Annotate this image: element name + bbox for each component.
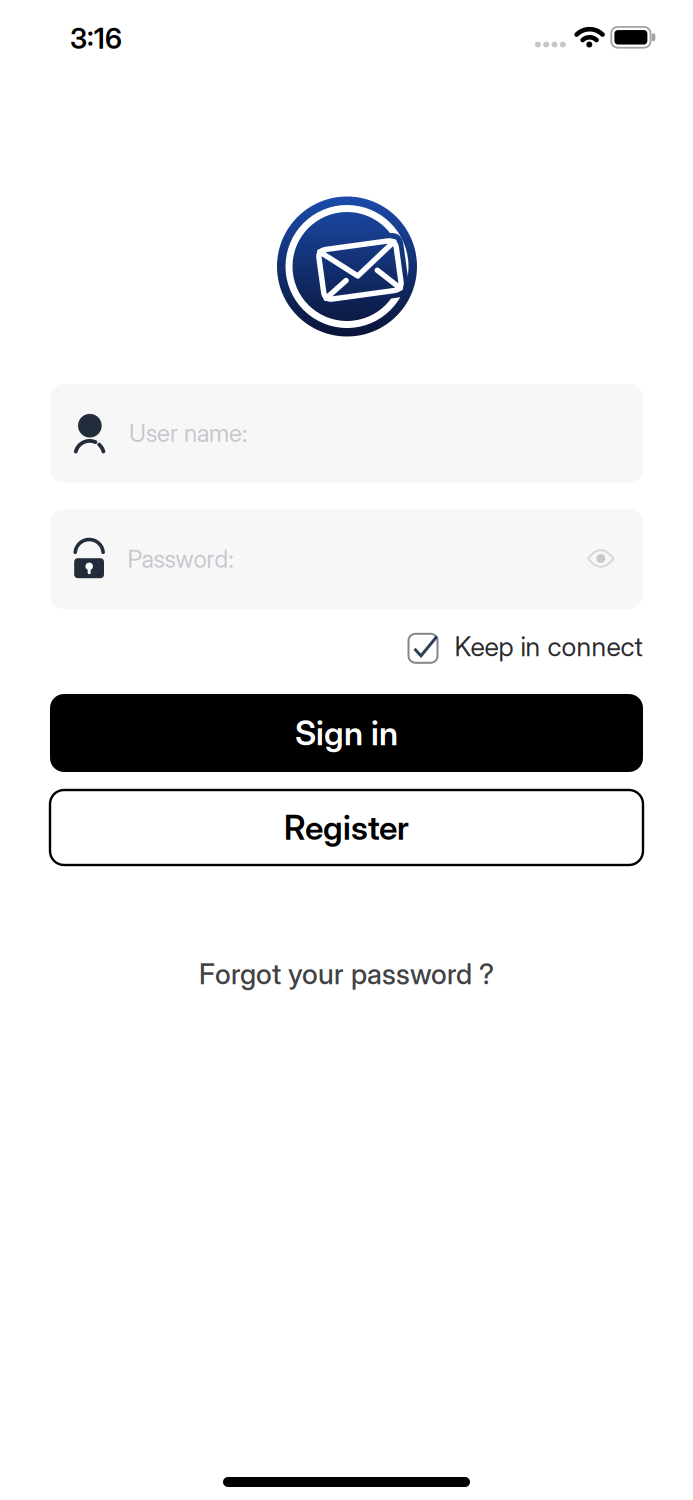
staticText: 3:16 (70, 22, 122, 55)
button[interactable]: User name: (50, 384, 643, 482)
staticText: Password: (127, 545, 233, 573)
staticText: Register (284, 808, 409, 847)
button[interactable]: Password: (50, 509, 643, 609)
button[interactable]: Keep in connect (408, 626, 643, 670)
button[interactable]: Register (50, 790, 643, 865)
staticText: Forgot your password ? (199, 957, 494, 990)
button[interactable]: Sign in (50, 694, 643, 772)
staticText: Sign in (295, 713, 398, 753)
staticText: User name: (129, 419, 247, 447)
button[interactable]: Forgot your password ? (199, 957, 494, 990)
staticText: Keep in connect (454, 631, 642, 662)
button[interactable] (579, 536, 623, 580)
